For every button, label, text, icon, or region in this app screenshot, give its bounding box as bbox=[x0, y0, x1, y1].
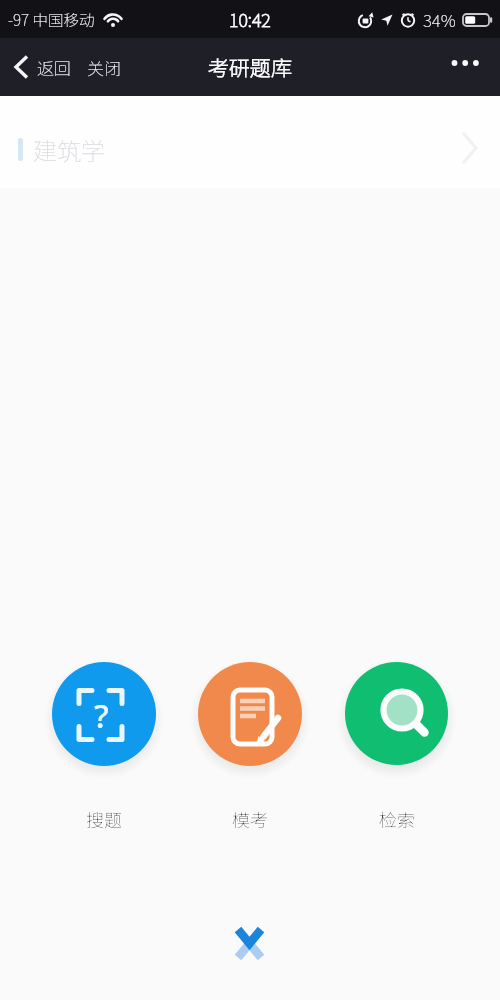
staticText: 34% bbox=[423, 7, 456, 32]
staticText: 检索 bbox=[379, 806, 415, 832]
staticText: ? bbox=[94, 693, 109, 738]
staticText: -97 中国移动 bbox=[8, 8, 95, 30]
staticText: 搜题 bbox=[86, 806, 122, 832]
staticText: 返回 bbox=[37, 55, 71, 80]
staticText: 10:42 bbox=[229, 6, 271, 32]
button[interactable]: 搜题 bbox=[52, 806, 156, 832]
staticText: 考研题库 bbox=[208, 52, 292, 82]
button[interactable]: 返回 bbox=[37, 55, 71, 80]
button[interactable] bbox=[12, 54, 34, 80]
button[interactable] bbox=[447, 50, 483, 76]
staticText: 模考 bbox=[232, 806, 268, 832]
button[interactable]: 关闭 bbox=[87, 55, 121, 80]
button[interactable]: 模考 bbox=[198, 806, 302, 832]
button[interactable]: 检索 bbox=[345, 806, 449, 832]
staticText: 建筑学 bbox=[33, 132, 105, 167]
button[interactable] bbox=[345, 662, 448, 765]
button[interactable] bbox=[224, 916, 276, 968]
button[interactable]: 建筑学 bbox=[0, 96, 500, 188]
staticText: 关闭 bbox=[87, 55, 121, 80]
button[interactable] bbox=[198, 662, 302, 766]
button[interactable]: ? bbox=[52, 662, 156, 766]
